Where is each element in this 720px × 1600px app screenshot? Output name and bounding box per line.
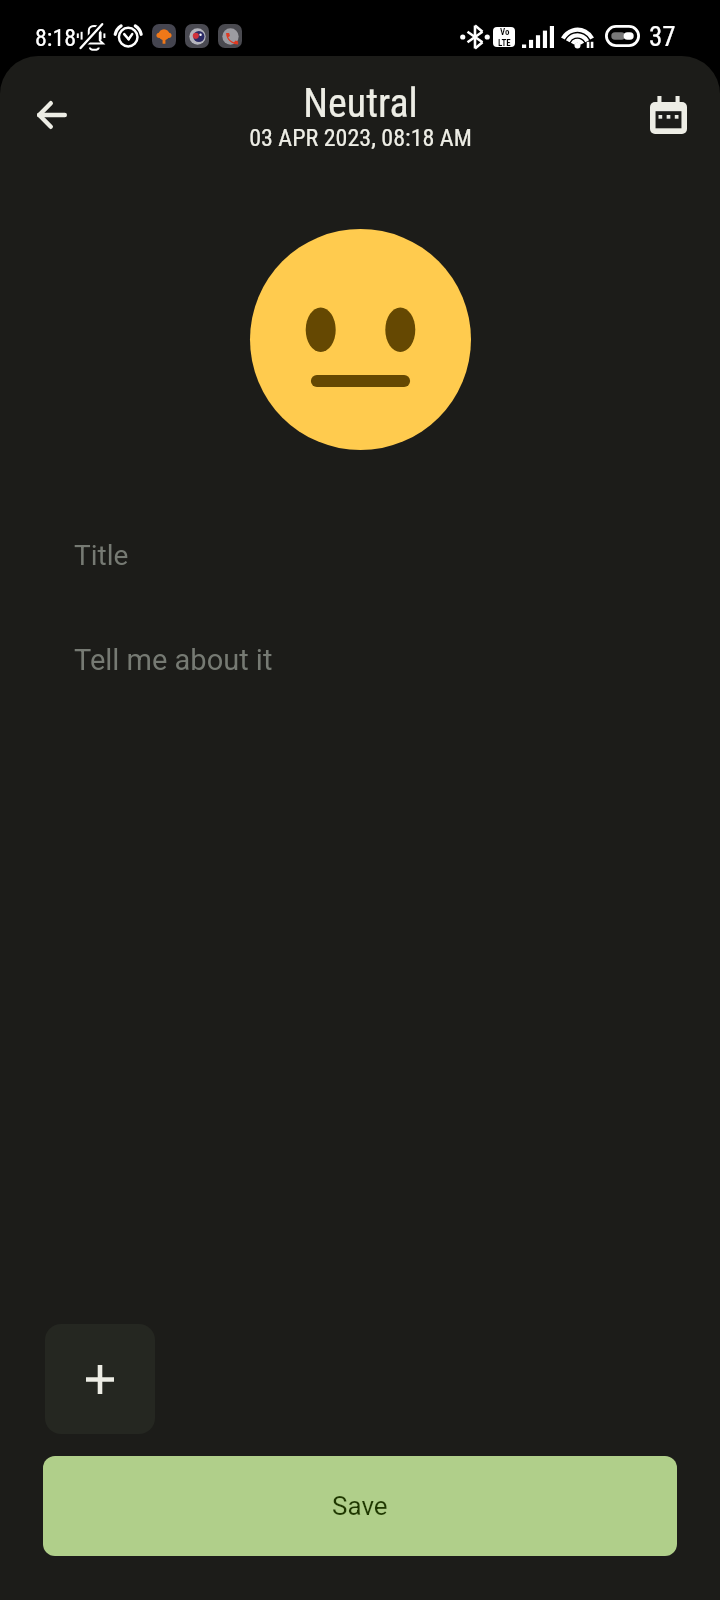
staticText: Neutral [303,80,418,127]
button[interactable]: Back [22,85,82,145]
staticText: LTE [498,38,511,47]
staticText: Vo [500,27,510,38]
staticText: 03 APR 2023, 08:18 AM [249,124,472,152]
staticText: 37 [649,21,676,53]
button[interactable]: Add image [45,1324,155,1434]
staticText: 8:18 [35,24,77,52]
staticText: Tell me about it [74,643,273,677]
button[interactable]: Pick date [638,85,698,145]
staticText: Title [74,539,129,572]
staticText: Save [332,1491,388,1521]
button[interactable]: Save [43,1456,677,1556]
